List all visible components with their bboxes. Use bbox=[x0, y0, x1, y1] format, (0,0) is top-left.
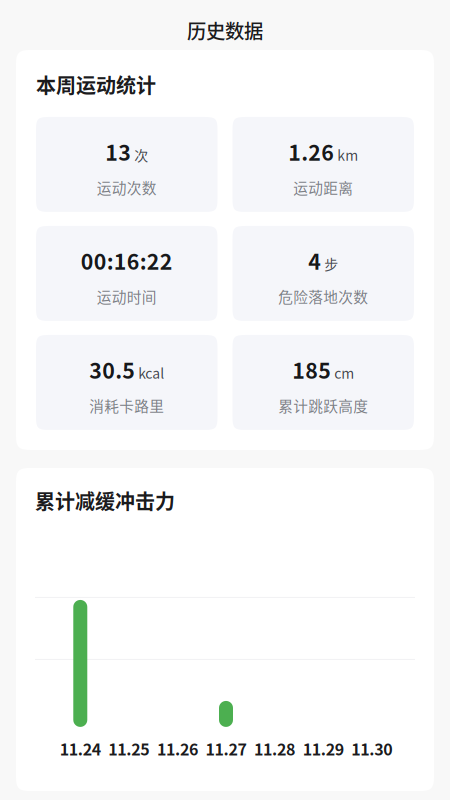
button[interactable]: 185 bbox=[232, 335, 414, 430]
staticText: 累计跳跃高度 bbox=[278, 395, 368, 416]
staticText: 运动距离 bbox=[293, 177, 353, 198]
staticText: 次 bbox=[134, 144, 148, 165]
staticText: 11.27 bbox=[205, 737, 246, 760]
staticText: 消耗卡路里 bbox=[89, 395, 164, 416]
staticText: 危险落地次数 bbox=[278, 286, 368, 307]
staticText: 30.5 bbox=[89, 354, 135, 385]
button[interactable]: 4 bbox=[232, 226, 414, 321]
staticText: 11.26 bbox=[157, 737, 198, 760]
staticText: 本周运动统计 bbox=[36, 70, 156, 99]
staticText: 1.26 bbox=[288, 136, 334, 167]
staticText: 4 bbox=[308, 245, 321, 276]
staticText: 11.24 bbox=[60, 737, 101, 760]
staticText: 历史数据 bbox=[187, 16, 263, 44]
staticText: 11.30 bbox=[351, 737, 392, 760]
staticText: 累计减缓冲击力 bbox=[35, 486, 175, 515]
staticText: 13 bbox=[105, 136, 131, 167]
staticText: 00:16:22 bbox=[81, 245, 173, 276]
staticText: km bbox=[337, 144, 358, 165]
staticText: 运动次数 bbox=[97, 177, 157, 198]
button[interactable]: 00:16:22 bbox=[36, 226, 217, 321]
button[interactable]: 30.5 bbox=[36, 335, 217, 430]
staticText: 11.25 bbox=[108, 737, 149, 760]
button[interactable]: 1.26 bbox=[232, 117, 414, 212]
staticText: 步 bbox=[324, 253, 338, 274]
staticText: cm bbox=[334, 362, 354, 383]
staticText: 185 bbox=[292, 354, 331, 385]
button[interactable]: 13 bbox=[36, 117, 217, 212]
staticText: 11.29 bbox=[303, 737, 344, 760]
staticText: 11.28 bbox=[254, 737, 295, 760]
staticText: 运动时间 bbox=[97, 286, 157, 307]
staticText: kcal bbox=[138, 362, 164, 383]
